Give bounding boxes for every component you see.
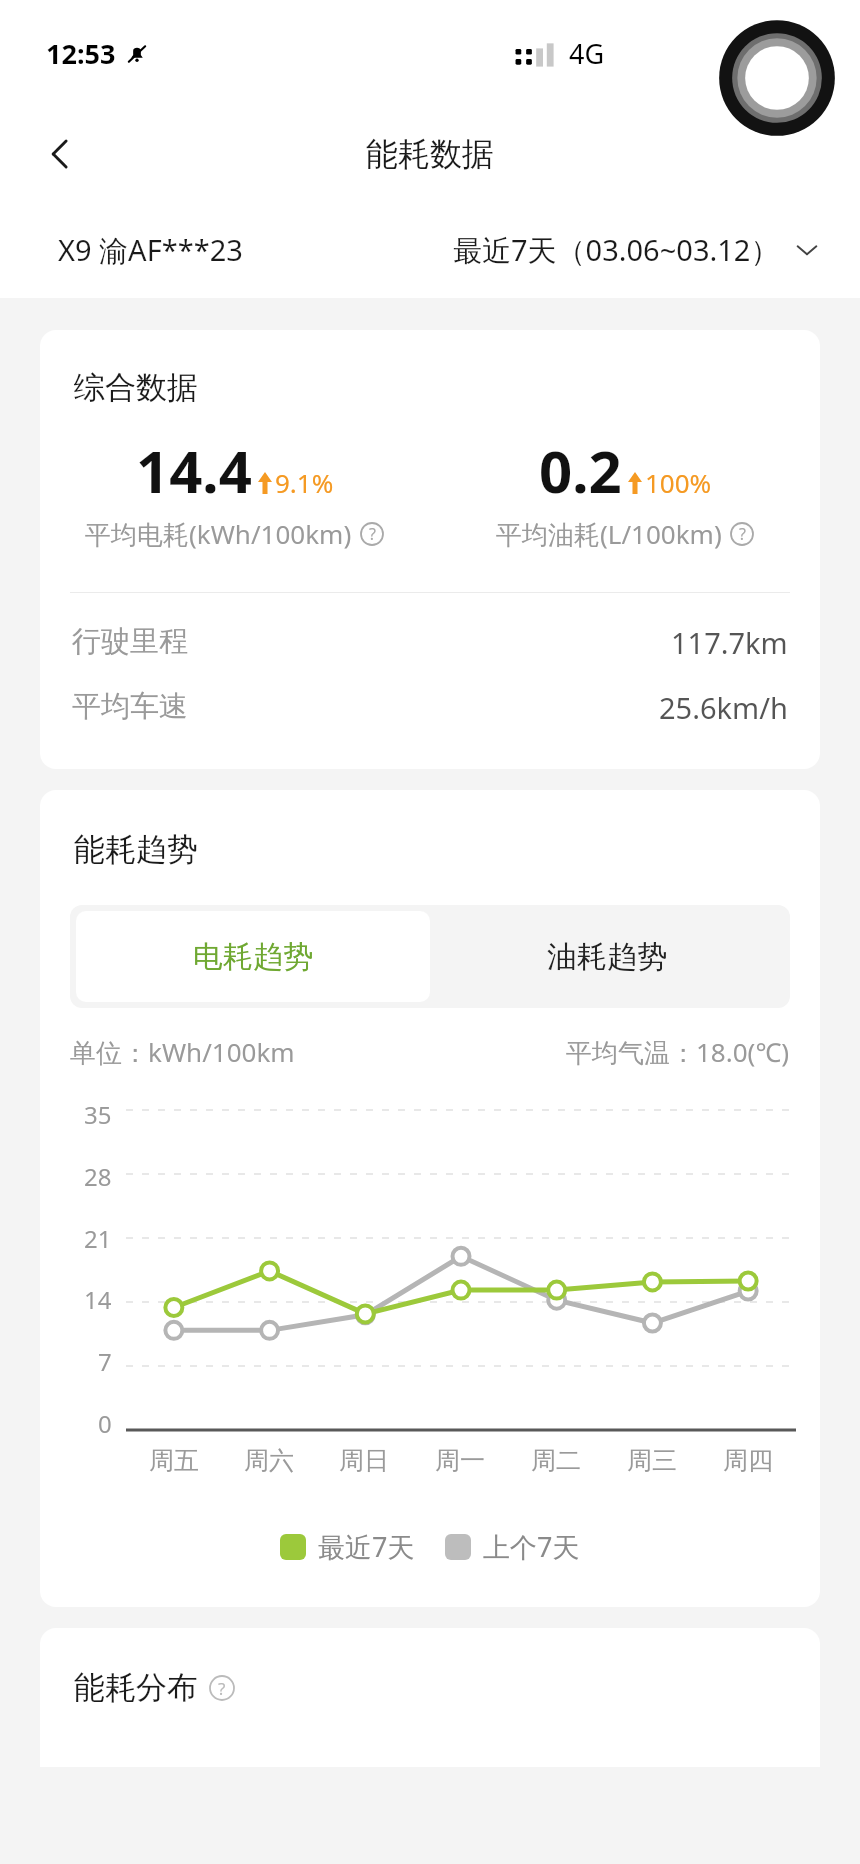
button[interactable]: 说明 — [359, 521, 385, 547]
staticText: 4G — [569, 35, 605, 72]
staticText: ? — [369, 523, 376, 545]
staticText: 周日 — [339, 1445, 389, 1476]
staticText: 117.7km — [671, 623, 788, 662]
staticText: 35 — [84, 1098, 112, 1131]
staticText: 周六 — [244, 1445, 294, 1476]
button[interactable]: 最近7天（03.06~03.12） — [453, 230, 820, 270]
staticText: ? — [218, 1677, 226, 1700]
staticText: 100% — [645, 465, 712, 500]
button[interactable]: 电耗趋势 — [76, 911, 430, 1002]
staticText: 能耗数据 — [366, 134, 494, 174]
staticText: 9.1% — [275, 465, 334, 500]
staticText: 周五 — [149, 1445, 199, 1476]
staticText: 单位：kWh/100km — [70, 1034, 295, 1070]
staticText: X9 渝AF***23 — [58, 230, 243, 270]
staticText: 12:53 — [46, 35, 116, 72]
staticText: 油耗趋势 — [547, 938, 667, 976]
staticText: 平均电耗(kWh/100km) — [85, 516, 352, 552]
staticText: 最近7天 — [318, 1528, 415, 1565]
staticText: 周三 — [627, 1445, 677, 1476]
staticText: 周一 — [435, 1445, 485, 1476]
staticText: 21 — [84, 1222, 112, 1255]
staticText: 平均车速 — [72, 688, 188, 725]
staticText: 0.2 — [539, 431, 622, 510]
staticText: 平均油耗(L/100km) — [496, 516, 722, 552]
staticText: 14 — [84, 1283, 112, 1316]
staticText: ? — [739, 523, 746, 545]
staticText: 25.6km/h — [659, 688, 788, 727]
staticText: 上个7天 — [483, 1528, 580, 1565]
staticText: 能耗分布 — [74, 1668, 198, 1707]
button[interactable]: 说明 — [208, 1674, 236, 1702]
staticText: 周四 — [723, 1445, 773, 1476]
staticText: 行驶里程 — [72, 623, 188, 660]
staticText: 周二 — [531, 1445, 581, 1476]
staticText: 电耗趋势 — [193, 938, 313, 976]
staticText: 0 — [98, 1407, 112, 1440]
staticText: 平均气温：18.0(℃) — [566, 1034, 790, 1070]
staticText: 7 — [98, 1345, 112, 1378]
button[interactable]: 说明 — [729, 521, 755, 547]
button[interactable]: 油耗趋势 — [430, 911, 784, 1002]
staticText: 最近7天（03.06~03.12） — [453, 230, 780, 270]
staticText: 28 — [84, 1160, 112, 1193]
button[interactable]: Back — [30, 124, 90, 184]
staticText: 综合数据 — [74, 368, 198, 407]
staticText: 14.4 — [136, 431, 252, 510]
staticText: 能耗趋势 — [74, 830, 198, 869]
